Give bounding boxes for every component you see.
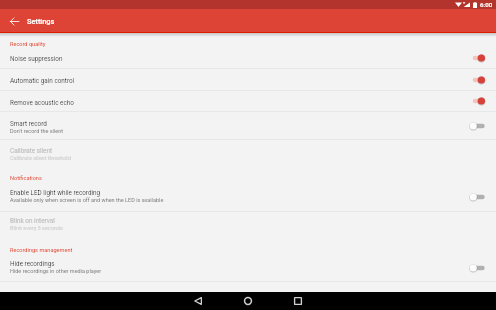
- staticText: Record quality: [10, 41, 46, 48]
- button[interactable]: Recent apps: [278, 292, 318, 310]
- staticText: Notifications: [10, 175, 42, 182]
- button[interactable]: Calibrate silent: [0, 140, 496, 167]
- staticText: Smart record: [10, 120, 47, 127]
- staticText: Recordings management: [10, 247, 73, 254]
- button[interactable]: Home: [228, 292, 268, 310]
- button[interactable]: Navigate up: [4, 11, 24, 31]
- button[interactable]: Back: [178, 292, 218, 310]
- button[interactable]: Automatic gain control: [0, 69, 496, 91]
- staticText: Automatic gain control: [10, 77, 75, 84]
- button[interactable]: Blink on interval: [0, 212, 496, 239]
- button[interactable]: Noise suppression: [0, 47, 496, 69]
- staticText: 6:00: [480, 1, 493, 8]
- staticText: Blink on interval: [10, 217, 55, 224]
- staticText: Settings: [27, 17, 55, 26]
- staticText: Calibrate silent threshold: [10, 155, 71, 161]
- button[interactable]: Remove acoustic echo: [0, 91, 496, 112]
- staticText: Blink every 5 seconds: [10, 225, 63, 231]
- staticText: Calibrate silent: [10, 147, 53, 154]
- staticText: Hide recordings in other media player: [10, 268, 102, 274]
- staticText: Don't record the silent: [10, 128, 64, 134]
- staticText: Available only when screen is off and wh…: [10, 197, 164, 203]
- staticText: Remove acoustic echo: [10, 99, 74, 106]
- button[interactable]: Hide recordings: [0, 255, 496, 282]
- button[interactable]: Smart record: [0, 112, 496, 140]
- staticText: Hide recordings: [10, 260, 55, 267]
- staticText: Enable LED light while recording: [10, 189, 101, 196]
- staticText: Noise suppression: [10, 55, 63, 62]
- button[interactable]: Enable LED light while recording: [0, 183, 496, 212]
